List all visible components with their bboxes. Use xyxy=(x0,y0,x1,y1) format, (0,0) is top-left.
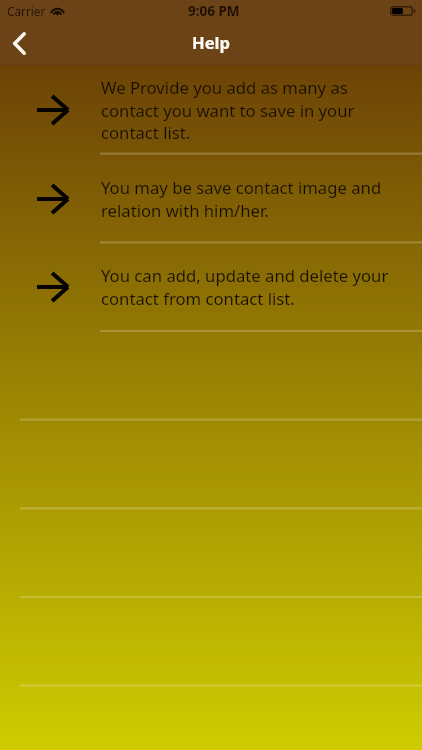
staticText: 9:06 PM xyxy=(188,2,240,20)
staticText: We Provide you add as many as contact yo… xyxy=(101,76,395,143)
staticText: You can add, update and delete your cont… xyxy=(101,264,395,309)
button[interactable]: You may be save contact image and relati… xyxy=(0,154,422,243)
staticText: Help xyxy=(192,31,231,54)
button[interactable]: Back xyxy=(0,24,46,65)
staticText: Carrier xyxy=(7,3,46,19)
button[interactable]: You can add, update and delete your cont… xyxy=(0,242,422,331)
staticText: You may be save contact image and relati… xyxy=(101,176,395,221)
button[interactable]: We Provide you add as many as contact yo… xyxy=(0,65,422,154)
